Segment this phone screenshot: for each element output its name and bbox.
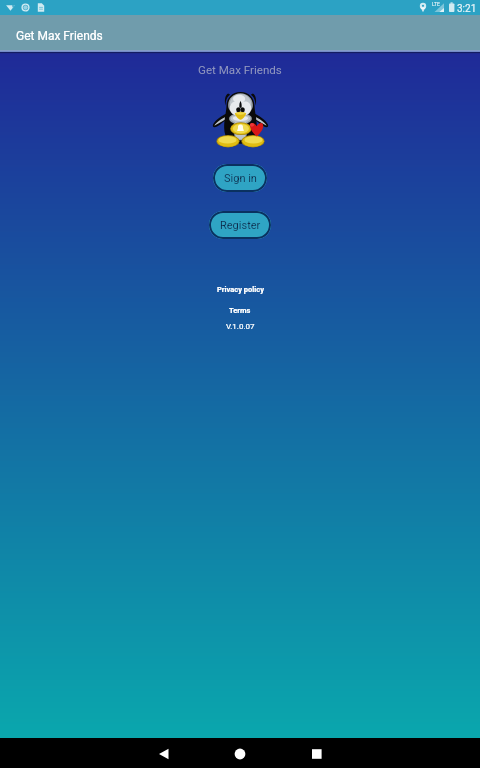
- button[interactable]: Sign in: [213, 164, 267, 192]
- staticText: Register: [220, 219, 261, 232]
- button[interactable]: Register: [209, 211, 271, 239]
- button[interactable]: Terms: [229, 306, 251, 315]
- staticText: Get Max Friends: [16, 29, 103, 43]
- staticText: V.1.0.07: [226, 322, 255, 331]
- staticText: 3:21: [457, 3, 477, 15]
- button[interactable]: Privacy policy: [217, 285, 264, 294]
- button[interactable]: Recent apps: [320, 738, 480, 768]
- staticText: LTE: [432, 1, 440, 7]
- button[interactable]: Home: [160, 738, 320, 768]
- staticText: Get Max Friends: [198, 63, 282, 77]
- staticText: Sign in: [224, 172, 257, 185]
